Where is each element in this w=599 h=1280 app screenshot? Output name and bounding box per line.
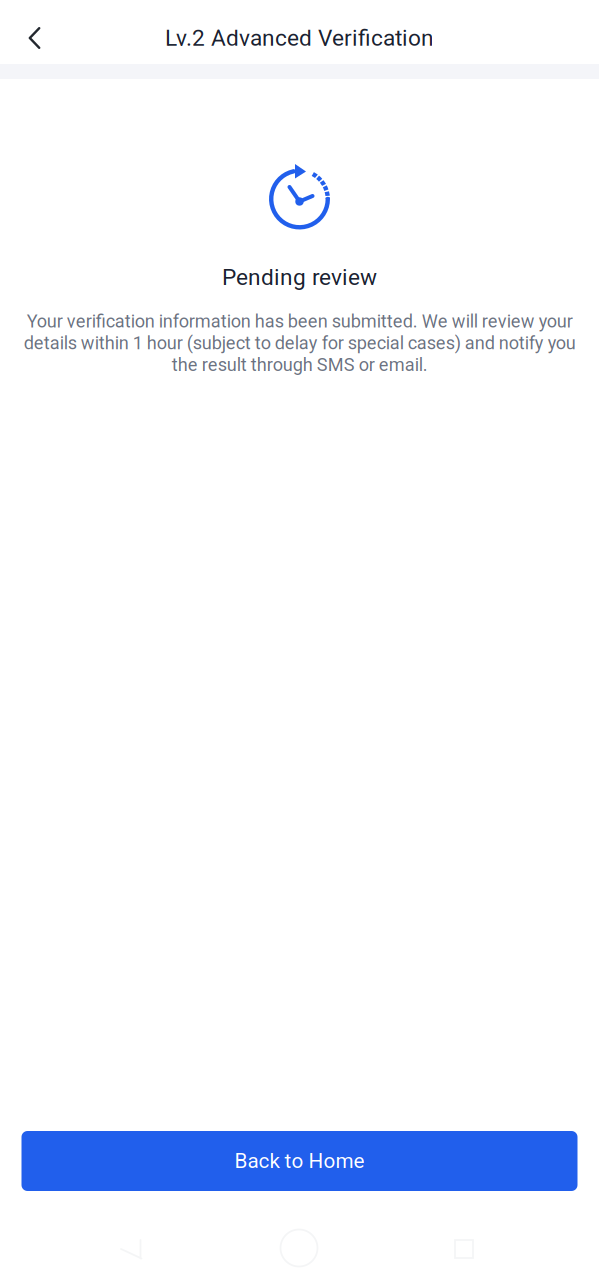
button[interactable]: Back to Home <box>21 1131 577 1191</box>
button[interactable]: Back <box>0 0 68 64</box>
staticText: Pending review <box>222 264 377 291</box>
staticText: Lv.2 Advanced Verification <box>165 25 434 51</box>
staticText: Back to Home <box>234 1149 364 1173</box>
staticText: Your verification information has been s… <box>23 311 575 375</box>
